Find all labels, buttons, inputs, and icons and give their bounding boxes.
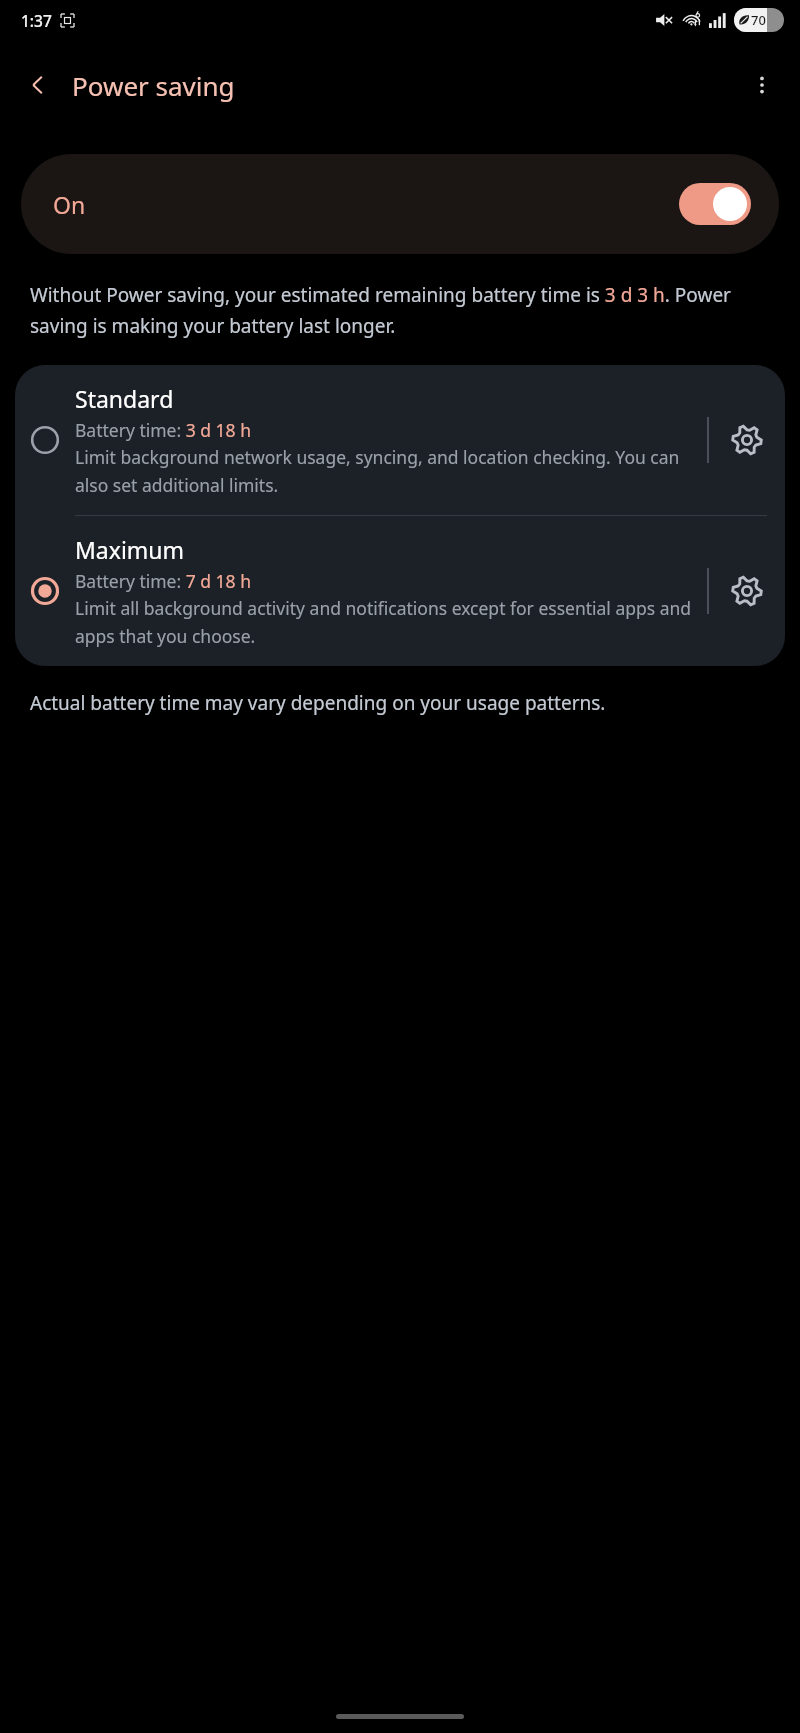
staticText: Power saving xyxy=(72,68,235,103)
staticText: 70 xyxy=(751,11,766,29)
staticText: On xyxy=(53,189,86,220)
button[interactable]: More options xyxy=(736,59,788,111)
button[interactable]: Standard settings xyxy=(709,402,785,478)
staticText: Standard xyxy=(75,383,174,414)
other: Power saving toggle xyxy=(679,183,751,225)
staticText: Battery time: 3 d 18 h xyxy=(75,418,251,442)
button[interactable]: On xyxy=(21,154,779,254)
staticText: Battery time: 7 d 18 h xyxy=(75,569,251,593)
staticText: Actual battery time may vary depending o… xyxy=(30,690,606,716)
staticText: Limit background network usage, syncing,… xyxy=(75,445,699,497)
button[interactable]: Maximum settings xyxy=(709,553,785,629)
button[interactable]: Maximum xyxy=(15,516,785,666)
button[interactable]: Back xyxy=(12,59,64,111)
staticText: Limit all background activity and notifi… xyxy=(75,596,699,648)
staticText: 1:37 xyxy=(21,10,52,31)
button[interactable]: Standard xyxy=(15,365,785,515)
staticText: Maximum xyxy=(75,534,185,565)
staticText: Without Power saving, your estimated rem… xyxy=(30,282,770,339)
